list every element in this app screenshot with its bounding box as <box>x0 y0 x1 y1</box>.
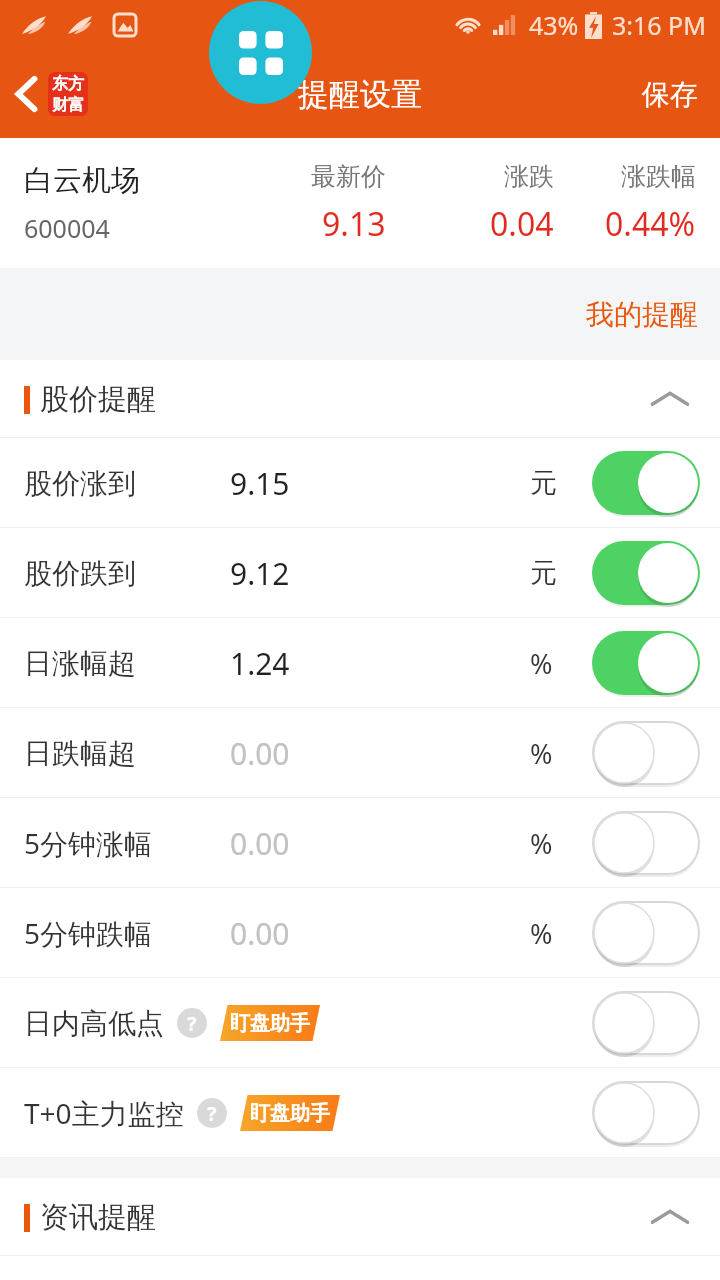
staticText: % <box>530 915 553 952</box>
staticText: % <box>530 735 553 772</box>
staticText: 涨跌幅 <box>621 161 696 192</box>
staticText: 3:16 PM <box>612 8 706 42</box>
staticText: 日跌幅超 <box>24 736 136 771</box>
staticText: 9.13 <box>322 202 386 246</box>
staticText: 元 <box>530 556 557 590</box>
staticText: 提醒设置 <box>298 75 422 114</box>
staticText: 9.15 <box>230 463 290 504</box>
button[interactable]: 股价跌到 <box>0 528 720 618</box>
staticText: 涨跌 <box>504 161 554 192</box>
button[interactable]: 开启 <box>592 631 700 695</box>
staticText: 1.24 <box>230 643 290 684</box>
staticText: 600004 <box>24 211 110 245</box>
button[interactable]: 关闭 <box>592 721 700 785</box>
button[interactable]: 关闭 <box>592 901 700 965</box>
button[interactable]: T+0主力监控 <box>0 1068 720 1158</box>
staticText: 股价跌到 <box>24 556 136 591</box>
button[interactable]: 日跌幅超 <box>0 708 720 798</box>
staticText: 最新价 <box>311 161 386 192</box>
button[interactable]: 说明 <box>197 1098 227 1128</box>
button[interactable]: 日涨幅超 <box>0 618 720 708</box>
button[interactable]: 资讯提醒 <box>0 1178 720 1256</box>
staticText: 0.44% <box>605 202 696 246</box>
staticText: 我的提醒 <box>586 297 698 332</box>
button[interactable]: 5分钟涨幅 <box>0 798 720 888</box>
staticText: T+0主力监控 <box>24 1094 184 1132</box>
staticText: 盯盘助手 <box>250 1101 330 1126</box>
staticText: 股价涨到 <box>24 466 136 501</box>
staticText: % <box>530 825 553 862</box>
staticText: 日涨幅超 <box>24 646 136 681</box>
staticText: 财富 <box>52 95 84 115</box>
staticText: 0.00 <box>230 733 290 774</box>
other: 收起 <box>650 388 690 410</box>
button[interactable]: 股价提醒 <box>0 360 720 438</box>
button[interactable]: 日内高低点 <box>0 978 720 1068</box>
staticText: 日内高低点 <box>24 1006 164 1041</box>
staticText: ? <box>187 1010 197 1037</box>
button[interactable]: 说明 <box>177 1008 207 1038</box>
staticText: 9.12 <box>230 553 290 594</box>
staticText: % <box>530 645 553 682</box>
staticText: 5分钟跌幅 <box>24 914 153 952</box>
staticText: 盯盘助手 <box>230 1011 310 1036</box>
staticText: 0.00 <box>230 823 290 864</box>
button[interactable]: 股价涨到 <box>0 438 720 528</box>
button[interactable]: 关闭 <box>592 811 700 875</box>
staticText: 0.00 <box>230 913 290 954</box>
button[interactable]: 保存 <box>620 65 720 124</box>
button[interactable]: 开启 <box>592 541 700 605</box>
staticText: 5分钟涨幅 <box>24 824 153 862</box>
button[interactable]: 快捷菜单 <box>209 1 312 104</box>
staticText: 白云机场 <box>24 162 140 199</box>
button[interactable]: 我的提醒 <box>564 281 720 348</box>
staticText: 元 <box>530 466 557 500</box>
staticText: 东方 <box>52 74 84 94</box>
other: 收起 <box>650 1206 690 1228</box>
staticText: 0.04 <box>490 202 554 246</box>
button[interactable]: 关闭 <box>592 1081 700 1145</box>
staticText: 43% <box>529 8 579 42</box>
staticText: 保存 <box>642 77 698 112</box>
button[interactable]: 5分钟跌幅 <box>0 888 720 978</box>
button[interactable]: 关闭 <box>592 991 700 1055</box>
staticText: 股价提醒 <box>40 381 156 418</box>
staticText: 资讯提醒 <box>40 1199 156 1236</box>
staticText: ? <box>207 1100 217 1127</box>
button[interactable]: 开启 <box>592 451 700 515</box>
button[interactable]: 返回 <box>0 62 98 126</box>
